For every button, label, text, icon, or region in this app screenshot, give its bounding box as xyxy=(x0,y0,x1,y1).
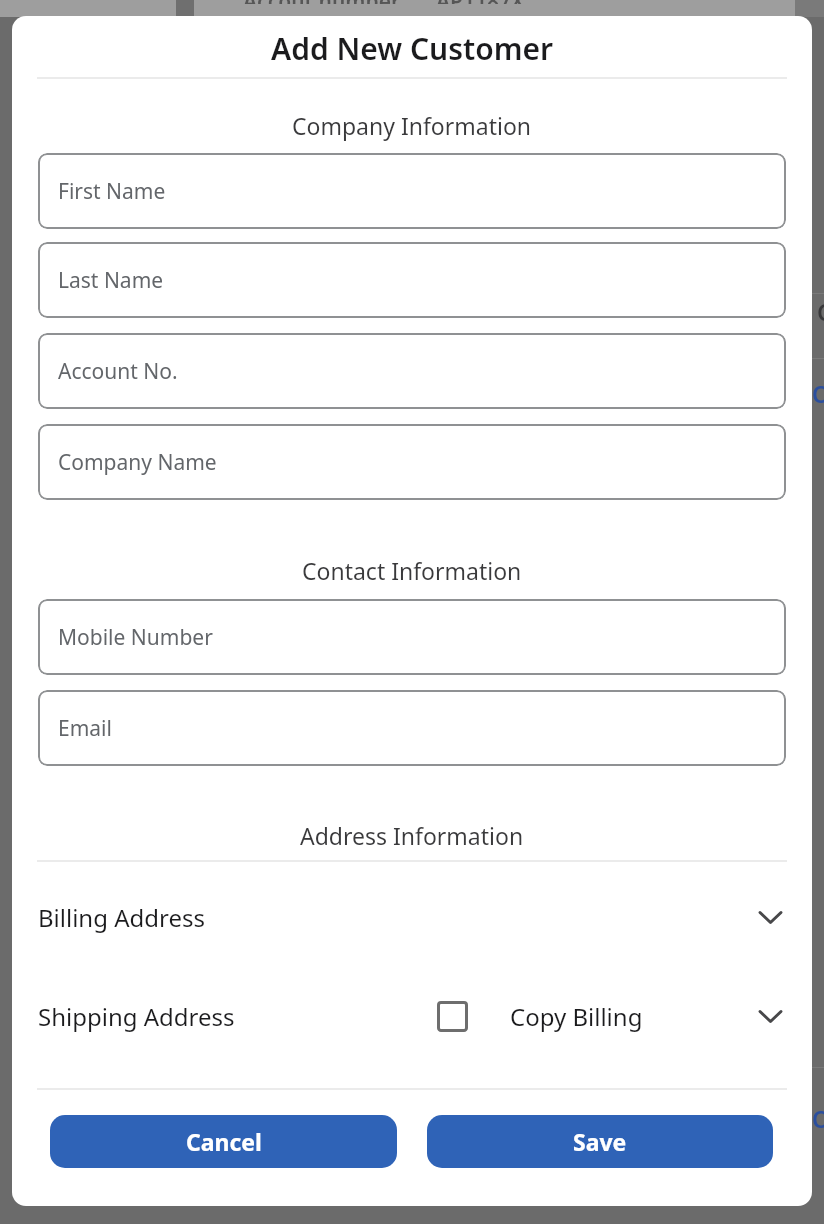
staticText: Last Name xyxy=(58,266,164,295)
staticText: Billing Address xyxy=(38,901,206,934)
staticText: Cancel xyxy=(186,1126,262,1157)
button[interactable]: Billing Address xyxy=(38,894,786,940)
staticText: Or xyxy=(812,1103,824,1134)
staticText: C xyxy=(817,296,824,327)
button[interactable]: Save xyxy=(427,1115,773,1168)
staticText: Company Name xyxy=(58,448,217,477)
staticText: Add New Customer xyxy=(271,28,554,69)
staticText: Shipping Address xyxy=(38,1000,235,1033)
button[interactable]: Last Name xyxy=(38,242,786,318)
button[interactable]: Cancel xyxy=(50,1115,397,1168)
staticText: O xyxy=(812,378,824,409)
staticText: Email xyxy=(58,714,112,743)
staticText: Mobile Number xyxy=(58,623,213,652)
button[interactable]: Company Name xyxy=(38,424,786,500)
button[interactable]: First Name xyxy=(38,153,786,229)
button[interactable]: Mobile Number xyxy=(38,599,786,675)
staticText: Accout number xyxy=(243,0,401,4)
staticText: Contact Information xyxy=(302,555,522,586)
staticText: Address Information xyxy=(300,820,524,851)
staticText: AP1187X xyxy=(436,0,525,4)
button[interactable]: Account No. xyxy=(38,333,786,409)
staticText: Copy Billing xyxy=(510,1000,643,1033)
button[interactable]: Shipping Address xyxy=(38,993,786,1039)
staticText: First Name xyxy=(58,177,166,206)
button[interactable] xyxy=(437,1001,468,1032)
staticText: Save xyxy=(573,1126,627,1157)
staticText: Company Information xyxy=(292,110,532,141)
staticText: Account No. xyxy=(58,357,178,386)
button[interactable]: Email xyxy=(38,690,786,766)
